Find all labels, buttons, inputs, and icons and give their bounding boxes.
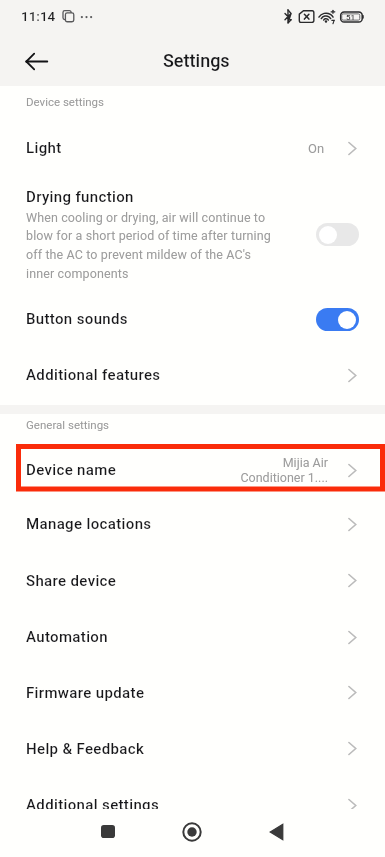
button[interactable]: Switch off: [316, 223, 359, 246]
staticText: Share device: [26, 572, 117, 590]
staticText: Additional features: [26, 366, 161, 384]
staticText: Device settings: [26, 95, 105, 108]
button[interactable]: Switch on: [316, 308, 359, 331]
button[interactable]: Firmware update: [0, 665, 385, 720]
button[interactable]: Automation: [0, 609, 385, 665]
button[interactable]: Manage locations: [0, 496, 385, 552]
button[interactable]: Light: [0, 123, 385, 173]
staticText: Mijia Air Conditioner 1....: [240, 455, 328, 485]
staticText: Device name: [26, 461, 117, 479]
button[interactable]: Back: [254, 809, 298, 853]
staticText: Help & Feedback: [26, 740, 145, 758]
staticText: 11:14: [21, 8, 56, 24]
button[interactable]: Drying function: [0, 173, 385, 291]
staticText: Drying function: [26, 188, 134, 206]
staticText: 51: [346, 13, 356, 22]
button[interactable]: Share device: [0, 552, 385, 609]
staticText: Button sounds: [26, 310, 128, 328]
button[interactable]: Home: [170, 809, 214, 853]
staticText: Firmware update: [26, 684, 145, 702]
staticText: Additional settings: [26, 796, 160, 814]
staticText: On: [308, 141, 325, 156]
button[interactable]: Recent apps: [86, 809, 130, 853]
staticText: Manage locations: [26, 515, 152, 533]
staticText: Automation: [26, 628, 108, 646]
staticText: When cooling or drying, air will continu…: [26, 210, 273, 281]
staticText: Light: [26, 139, 62, 157]
staticText: Settings: [163, 50, 230, 71]
button[interactable]: Additional settings: [0, 777, 385, 833]
staticText: General settings: [26, 418, 110, 431]
button[interactable]: Back: [14, 39, 58, 83]
button[interactable]: Help & Feedback: [0, 720, 385, 777]
button[interactable]: Button sounds: [0, 291, 385, 347]
button[interactable]: Additional features: [0, 347, 385, 403]
button[interactable]: Device name: [0, 444, 385, 496]
